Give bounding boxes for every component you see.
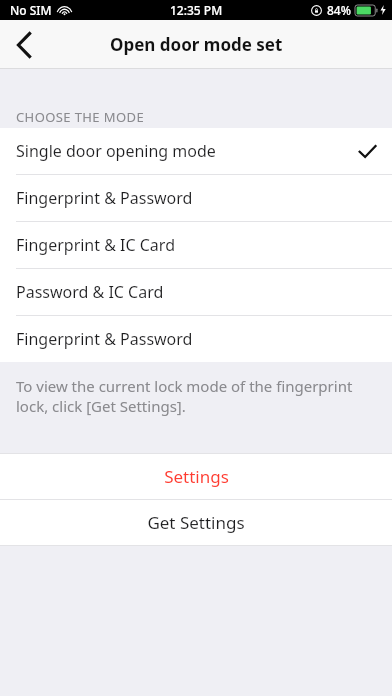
button[interactable]: Settings <box>0 454 392 499</box>
staticText: 84% <box>327 2 351 18</box>
staticText: Fingerprint & IC Card <box>16 234 175 256</box>
staticText: Fingerprint & Password <box>16 328 193 350</box>
button[interactable]: Fingerprint & Password <box>0 175 392 221</box>
staticText: No SIM <box>10 2 52 18</box>
staticText: To view the current lock mode of the fin… <box>16 376 378 416</box>
staticText: Settings <box>164 465 229 488</box>
staticText: Password & IC Card <box>16 281 164 303</box>
staticText: Fingerprint & Password <box>16 187 193 209</box>
button[interactable]: Back <box>0 21 48 69</box>
button[interactable]: Fingerprint & IC Card <box>0 222 392 268</box>
button[interactable]: Single door opening mode <box>0 128 392 174</box>
staticText: Single door opening mode <box>16 140 216 162</box>
staticText: 12:35 PM <box>170 2 223 18</box>
staticText: Open door mode set <box>110 33 283 56</box>
button[interactable]: Password & IC Card <box>0 269 392 315</box>
button[interactable]: Fingerprint & Password <box>0 316 392 362</box>
staticText: Get Settings <box>147 511 245 534</box>
button[interactable]: Get Settings <box>0 500 392 545</box>
staticText: CHOOSE THE MODE <box>16 108 145 126</box>
